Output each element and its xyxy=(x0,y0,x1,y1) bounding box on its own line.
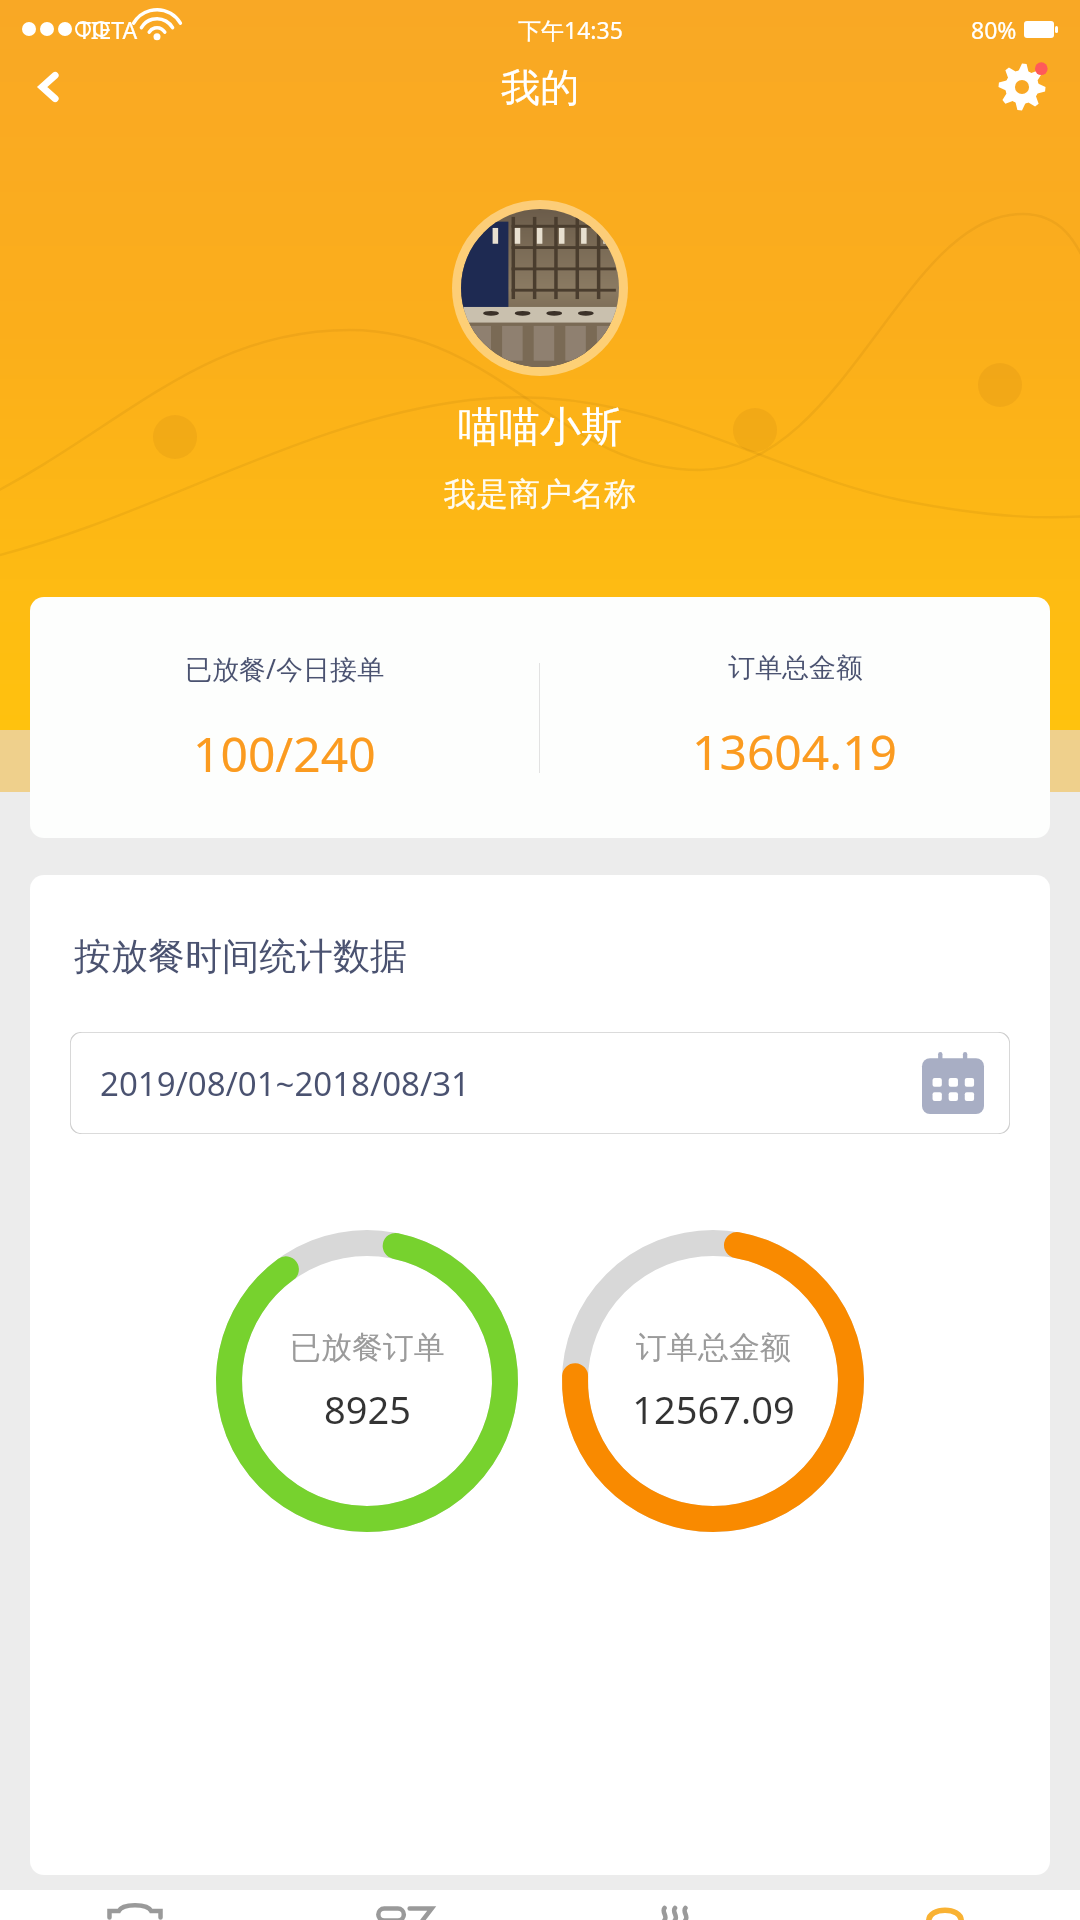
staticText: 已放餐/今日接单 xyxy=(185,650,385,687)
button[interactable]: Back xyxy=(10,58,88,116)
staticText: 喵喵小斯 xyxy=(458,402,622,454)
button[interactable]: 已放餐/今日接单 xyxy=(30,597,1050,838)
staticText: 13604.19 xyxy=(692,719,898,784)
staticText: 我的 xyxy=(501,63,579,112)
staticText: 按放餐时间统计数据 xyxy=(74,933,407,980)
staticText: 我是商户名称 xyxy=(444,474,636,514)
staticText: TIETA xyxy=(78,14,138,45)
staticText: 8925 xyxy=(324,1383,411,1435)
staticText: 12567.09 xyxy=(632,1383,795,1435)
button[interactable]: Steam xyxy=(540,1890,810,1920)
staticText: 订单总金额 xyxy=(636,1328,791,1367)
button[interactable]: 已放餐订单 xyxy=(212,1226,522,1536)
button[interactable]: Messages xyxy=(270,1890,540,1920)
staticText: 已放餐订单 xyxy=(290,1328,445,1367)
button[interactable]: Settings xyxy=(982,58,1062,116)
button[interactable]: 2019/08/01~2018/08/31 xyxy=(70,1032,1010,1134)
button[interactable]: Avatar xyxy=(461,209,619,367)
staticText: 80% xyxy=(971,14,1017,45)
staticText: 订单总金额 xyxy=(728,651,863,685)
button[interactable]: Mine xyxy=(810,1890,1080,1920)
button[interactable]: Orders xyxy=(0,1890,270,1920)
staticText: 2019/08/01~2018/08/31 xyxy=(100,1061,470,1106)
staticText: 100/240 xyxy=(193,721,376,786)
staticText: 下午14:35 xyxy=(518,14,623,45)
button[interactable]: 订单总金额 xyxy=(558,1226,868,1536)
